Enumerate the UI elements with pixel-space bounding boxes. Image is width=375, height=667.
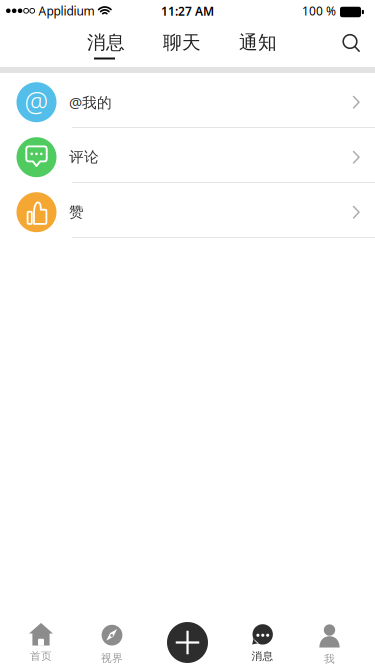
staticText: 评论	[69, 148, 99, 166]
staticText: 消息	[251, 650, 273, 663]
staticText: @	[24, 84, 48, 119]
staticText: 消息	[87, 31, 125, 54]
button[interactable]: 首页	[29, 623, 53, 663]
button[interactable]: 消息	[251, 624, 273, 663]
staticText: Applidium	[39, 3, 95, 19]
button[interactable]: 通知	[239, 31, 277, 54]
button[interactable]: Search	[342, 34, 360, 52]
staticText: 我	[324, 652, 335, 665]
button[interactable]: 赞	[0, 183, 375, 238]
button[interactable]: 聊天	[163, 31, 201, 54]
staticText: 聊天	[163, 31, 201, 54]
button[interactable]: 视界	[101, 625, 123, 665]
staticText: 首页	[30, 649, 52, 663]
staticText: 赞	[69, 203, 84, 221]
staticText: 100 %	[302, 3, 336, 19]
button[interactable]: 评论	[0, 128, 375, 183]
button[interactable]: 我	[319, 624, 340, 665]
staticText: 11:27 AM	[161, 3, 214, 19]
staticText: 视界	[101, 651, 123, 665]
button[interactable]: @	[0, 73, 375, 128]
button[interactable]: 消息	[87, 31, 125, 54]
staticText: @我的	[69, 92, 112, 112]
staticText: 通知	[239, 31, 277, 54]
button[interactable]: Compose	[167, 622, 208, 663]
